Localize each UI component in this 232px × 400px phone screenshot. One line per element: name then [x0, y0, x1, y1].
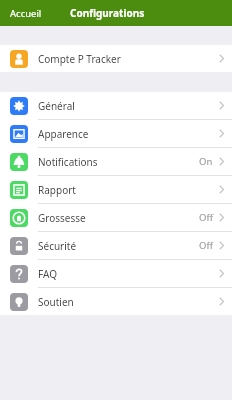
staticText: Général	[38, 99, 219, 113]
button[interactable]: Accueil	[0, 7, 48, 20]
staticText: Apparence	[38, 127, 219, 141]
button[interactable]: Sécurité	[0, 232, 232, 259]
staticText: Configurations	[70, 6, 145, 20]
button[interactable]: Notifications	[0, 148, 232, 175]
staticText: FAQ	[38, 267, 219, 281]
staticText: Sécurité	[38, 239, 199, 253]
staticText: Accueil	[10, 7, 42, 20]
staticText: On	[199, 155, 213, 168]
button[interactable]: Grossesse	[0, 204, 232, 231]
staticText: Rapport	[38, 183, 219, 197]
button[interactable]: Compte P Tracker	[0, 45, 232, 72]
button[interactable]: Apparence	[0, 120, 232, 147]
staticText: Compte P Tracker	[38, 52, 219, 66]
button[interactable]: Général	[0, 92, 232, 119]
button[interactable]: Rapport	[0, 176, 232, 203]
staticText: Notifications	[38, 155, 199, 169]
button[interactable]: FAQ	[0, 260, 232, 287]
staticText: Soutien	[38, 295, 219, 309]
staticText: Grossesse	[38, 211, 199, 225]
staticText: Off	[199, 211, 213, 224]
button[interactable]: Soutien	[0, 288, 232, 315]
staticText: Off	[199, 239, 213, 252]
